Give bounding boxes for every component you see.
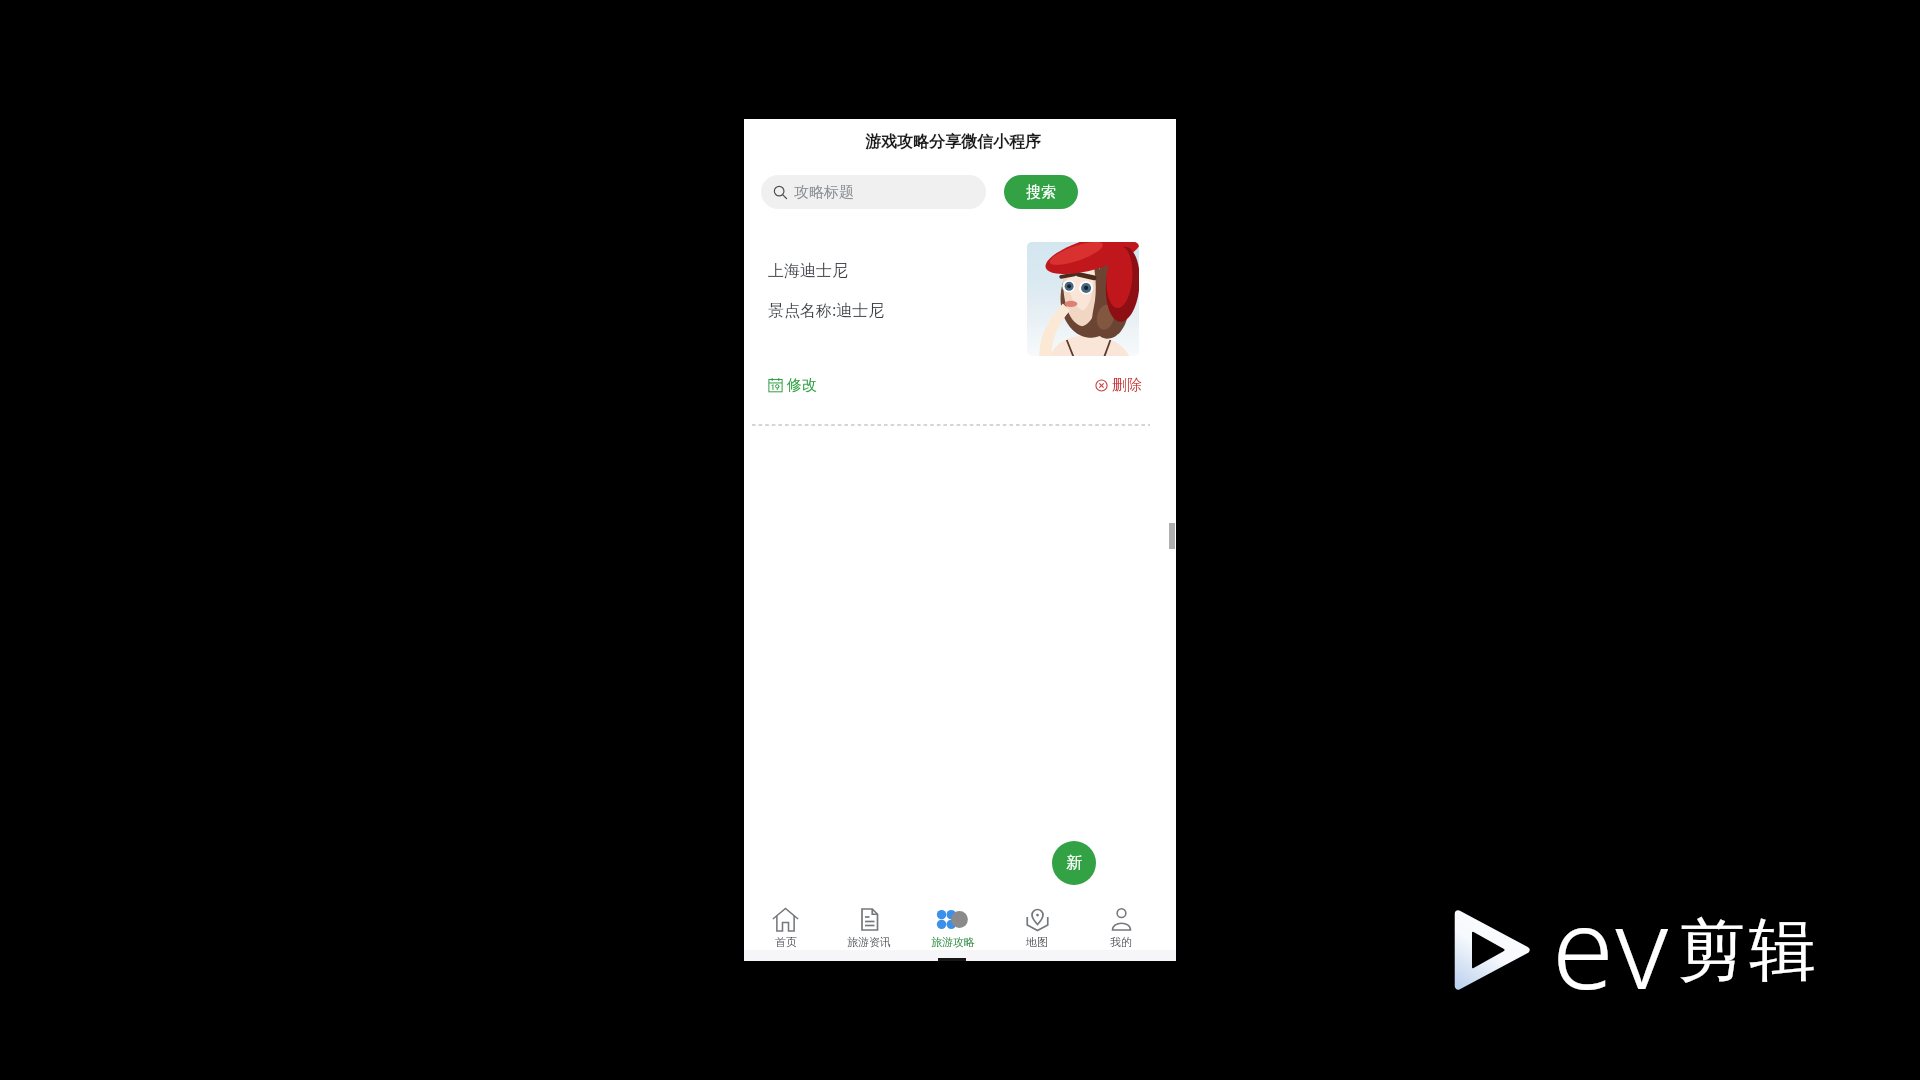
button[interactable]: 新增	[1052, 841, 1096, 885]
staticText: 新	[1066, 853, 1082, 873]
staticText: 地图	[1026, 935, 1048, 949]
staticText: 景点名称:迪士尼	[768, 299, 885, 321]
button[interactable]: 首页	[744, 896, 827, 950]
button[interactable]: 上海迪士尼	[744, 229, 1176, 369]
staticText: 游戏攻略分享微信小程序	[865, 132, 1041, 152]
staticText: 首页	[775, 935, 797, 949]
staticText: 剪辑	[1676, 908, 1818, 992]
staticText: 搜索	[1026, 183, 1056, 202]
staticText: 攻略标题	[794, 183, 854, 202]
button[interactable]: 我的	[1079, 896, 1163, 950]
button[interactable]: 攻略标题	[761, 175, 986, 209]
staticText: 我的	[1110, 935, 1132, 949]
staticText: 旅游攻略	[931, 935, 975, 949]
button[interactable]: 修改	[766, 374, 819, 396]
staticText: ev	[1552, 869, 1673, 1009]
staticText: 旅游资讯	[847, 935, 891, 949]
staticText: 上海迪士尼	[768, 261, 848, 281]
staticText: 修改	[787, 376, 817, 395]
button[interactable]: 删除	[1093, 374, 1144, 396]
staticText: 删除	[1112, 376, 1142, 395]
button[interactable]: 搜索	[1004, 175, 1078, 209]
button[interactable]: 旅游攻略	[911, 896, 995, 950]
button[interactable]: 地图	[995, 896, 1079, 950]
button[interactable]: 旅游资讯	[827, 896, 911, 950]
